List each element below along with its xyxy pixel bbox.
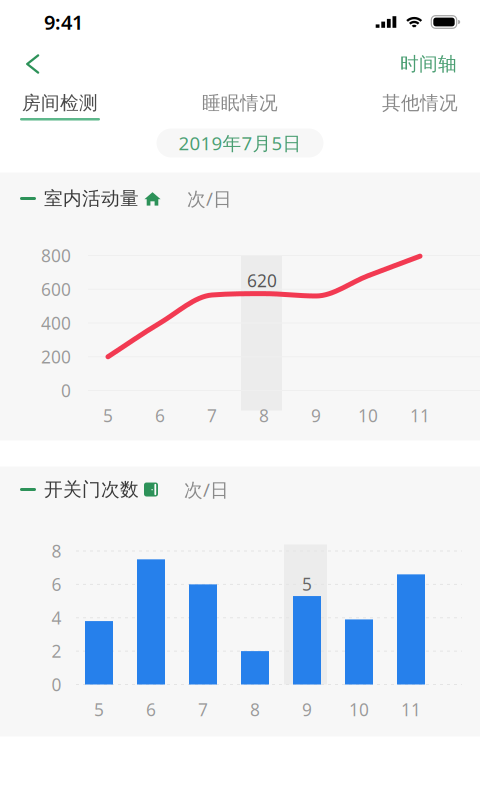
button[interactable]: 时间轴 <box>381 44 476 83</box>
staticText: 0 <box>51 673 61 696</box>
staticText: 9:41 <box>44 9 83 35</box>
staticText: 开关门次数 <box>44 478 139 501</box>
staticText: 2019年7月5日 <box>178 131 301 155</box>
staticText: 室内活动量 <box>44 187 139 210</box>
staticText: 620 <box>247 269 277 292</box>
staticText: 8 <box>259 404 269 427</box>
staticText: 200 <box>41 345 71 368</box>
staticText: 其他情况 <box>382 91 458 114</box>
staticText: 6 <box>155 404 165 427</box>
staticText: 房间检测 <box>22 91 98 114</box>
staticText: 400 <box>41 311 71 334</box>
staticText: 7 <box>207 404 217 427</box>
staticText: 10 <box>349 698 369 721</box>
staticText: 睡眠情况 <box>202 91 278 114</box>
staticText: 2 <box>51 640 61 663</box>
staticText: 5 <box>94 698 104 721</box>
staticText: 0 <box>61 379 71 402</box>
staticText: 时间轴 <box>400 52 457 75</box>
staticText: 6 <box>51 573 61 596</box>
staticText: 5 <box>103 404 113 427</box>
staticText: 5 <box>302 572 312 595</box>
staticText: 9 <box>302 698 312 721</box>
staticText: 9 <box>311 404 321 427</box>
staticText: 11 <box>410 404 430 427</box>
staticText: 11 <box>401 698 421 721</box>
staticText: 10 <box>358 404 378 427</box>
staticText: 600 <box>41 278 71 301</box>
staticText: 8 <box>51 539 61 562</box>
button[interactable]: 睡眠情况 <box>200 84 280 120</box>
staticText: 6 <box>146 698 156 721</box>
staticText: 4 <box>51 606 61 629</box>
button[interactable]: 2019年7月5日 <box>156 128 323 157</box>
staticText: 800 <box>41 244 71 267</box>
button[interactable]: 房间检测 <box>20 84 100 120</box>
button[interactable]: Back <box>13 46 52 82</box>
staticText: 8 <box>250 698 260 721</box>
staticText: 7 <box>198 698 208 721</box>
staticText: 次/日 <box>184 477 229 502</box>
button[interactable]: 其他情况 <box>380 84 460 120</box>
staticText: 次/日 <box>187 186 232 211</box>
